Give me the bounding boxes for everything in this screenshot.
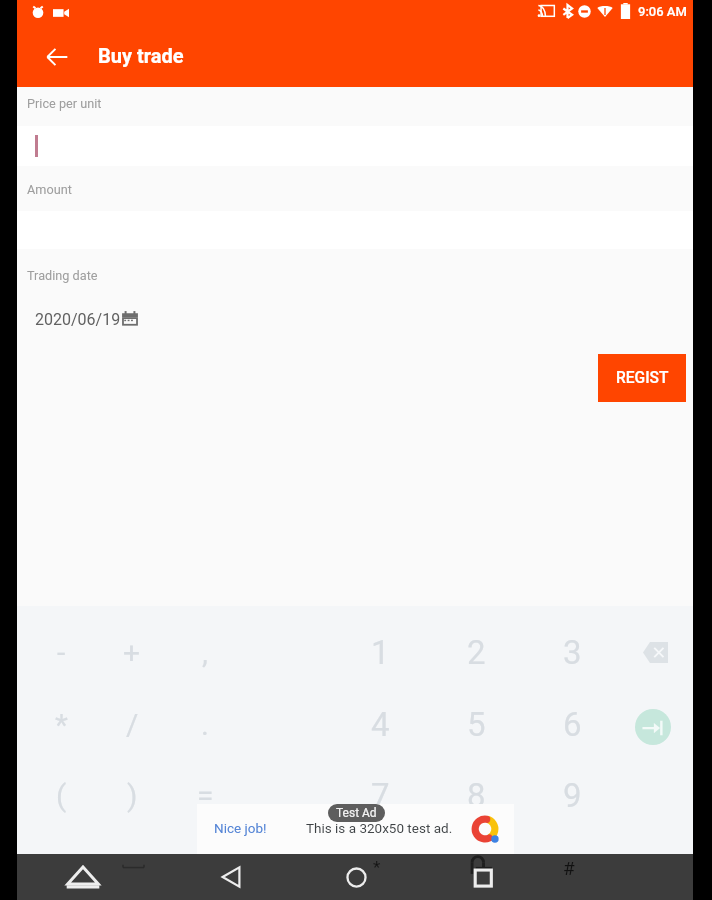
button[interactable]: 4 [340,690,420,758]
staticText: 6 [563,705,582,744]
staticText: Amount [27,182,72,197]
staticText: ( [56,778,67,813]
button[interactable]: REGIST [598,354,686,402]
button[interactable]: Back [32,32,82,82]
button[interactable]: 9 [532,761,612,829]
other: Keyboard layout [121,862,146,874]
staticText: 7 [371,776,390,815]
staticText: * [55,707,68,742]
button[interactable]: Backspace [615,612,695,692]
staticText: , [202,635,208,670]
staticText: 4 [371,705,390,744]
staticText: This is a 320x50 test ad. [306,820,453,836]
staticText: + [123,635,141,670]
staticText: 5 [467,705,486,744]
button[interactable]: 3 [532,618,612,686]
staticText: ) [127,778,138,813]
button[interactable]: Back [207,854,255,900]
staticText: = [197,778,214,813]
staticText: 3 [563,633,582,672]
staticText: 9:06 AM [638,4,687,19]
staticText: REGIST [616,369,669,387]
staticText: 1 [371,633,390,672]
button[interactable]: + [92,618,172,686]
staticText: 8 [467,776,486,815]
staticText: / [126,707,139,742]
staticText: . [201,707,209,742]
staticText: Trading date [27,268,98,283]
button[interactable]: Enter [613,687,693,767]
button[interactable]: Hide keyboard [50,854,116,900]
button[interactable] [17,126,693,166]
button[interactable]: 2020/06/19 [30,301,139,338]
staticText: Nice job! [214,820,267,836]
staticText: 2 [467,633,486,672]
button[interactable]: 5 [436,690,516,758]
button[interactable]: 6 [532,690,612,758]
staticText: 9 [563,776,582,815]
button[interactable]: = [165,761,245,829]
button[interactable]: 1 [340,618,420,686]
staticText: Test Ad [336,806,377,820]
button[interactable]: 2 [436,618,516,686]
button[interactable]: Recent apps [460,854,506,900]
staticText: # [563,857,575,879]
button[interactable]: 7 [340,761,420,829]
button[interactable]: Home [333,854,380,900]
staticText: Price per unit [27,96,102,111]
button[interactable]: ( [21,761,101,829]
staticText: Buy trade [98,44,184,67]
staticText: * [373,857,381,877]
staticText: - [57,635,66,670]
button[interactable]: Nice job! [197,804,514,854]
button[interactable]: 8 [436,761,516,829]
staticText: 2020/06/19 [35,310,121,329]
button[interactable]: ) [92,761,172,829]
